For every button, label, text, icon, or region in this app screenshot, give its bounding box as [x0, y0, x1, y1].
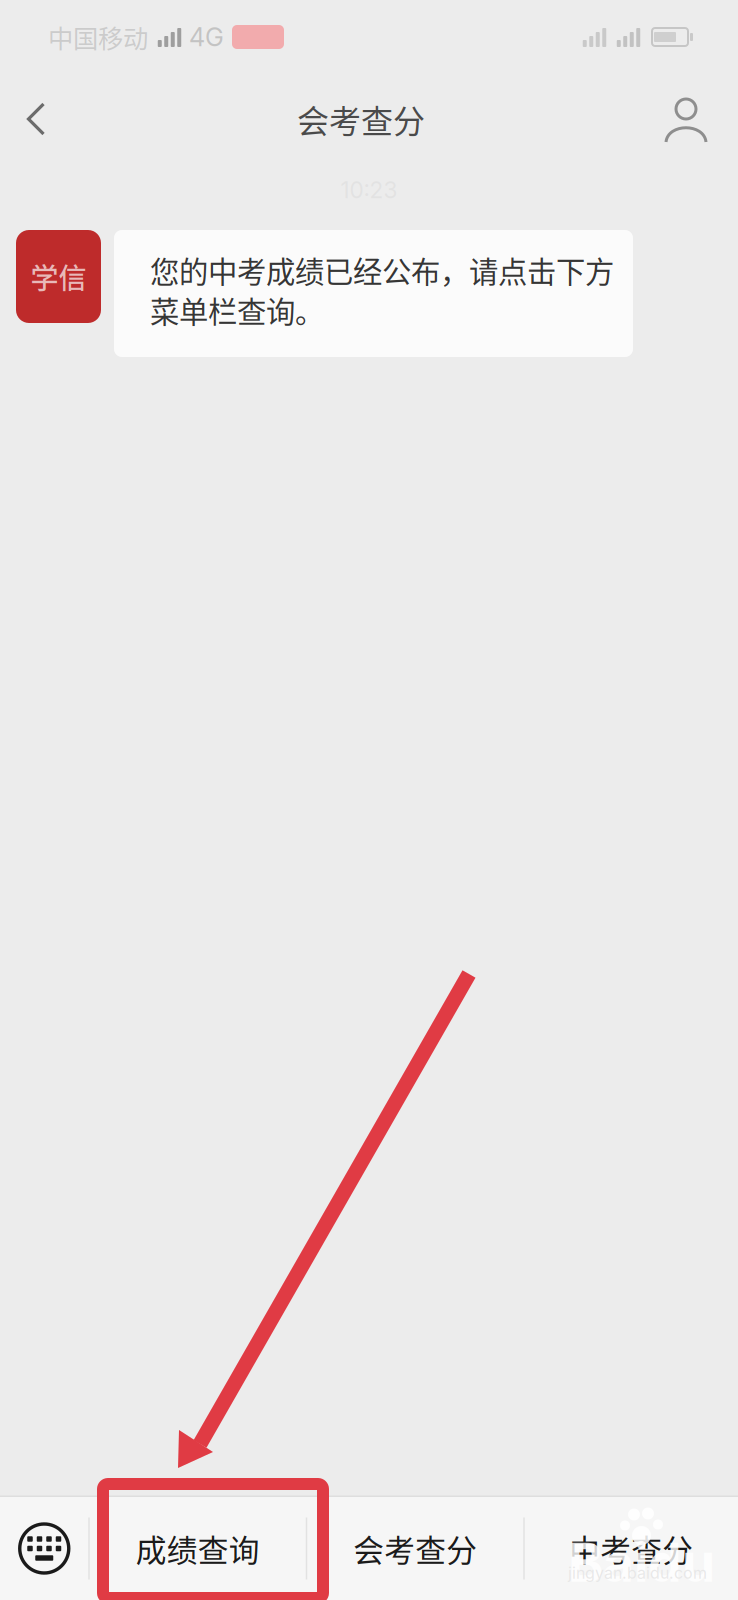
staticText: 中考查分	[569, 1526, 693, 1571]
staticText: Baidu	[568, 1530, 715, 1594]
button[interactable]: 个人中心	[650, 74, 722, 164]
button[interactable]: 返回	[0, 74, 72, 164]
button[interactable]: 成绩查询	[90, 1497, 306, 1600]
staticText: 会考查分	[353, 1526, 477, 1571]
staticText: jingyan.baidu.com	[568, 1563, 707, 1583]
staticText: 会考查分	[297, 96, 425, 142]
button[interactable]: 中考查分	[525, 1497, 738, 1600]
staticText: 10:23	[340, 176, 397, 204]
staticText: 4G	[189, 22, 224, 52]
button[interactable]: 键盘	[0, 1497, 88, 1600]
staticText: 菜单栏查询。	[150, 289, 324, 331]
staticText: 中国移动	[48, 19, 148, 55]
staticText: 成绩查询	[136, 1526, 260, 1571]
button[interactable]: 会考查分	[307, 1497, 523, 1600]
staticText: 学信	[30, 256, 86, 297]
staticText: 您的中考成绩已经公布，请点击下方	[150, 249, 614, 291]
